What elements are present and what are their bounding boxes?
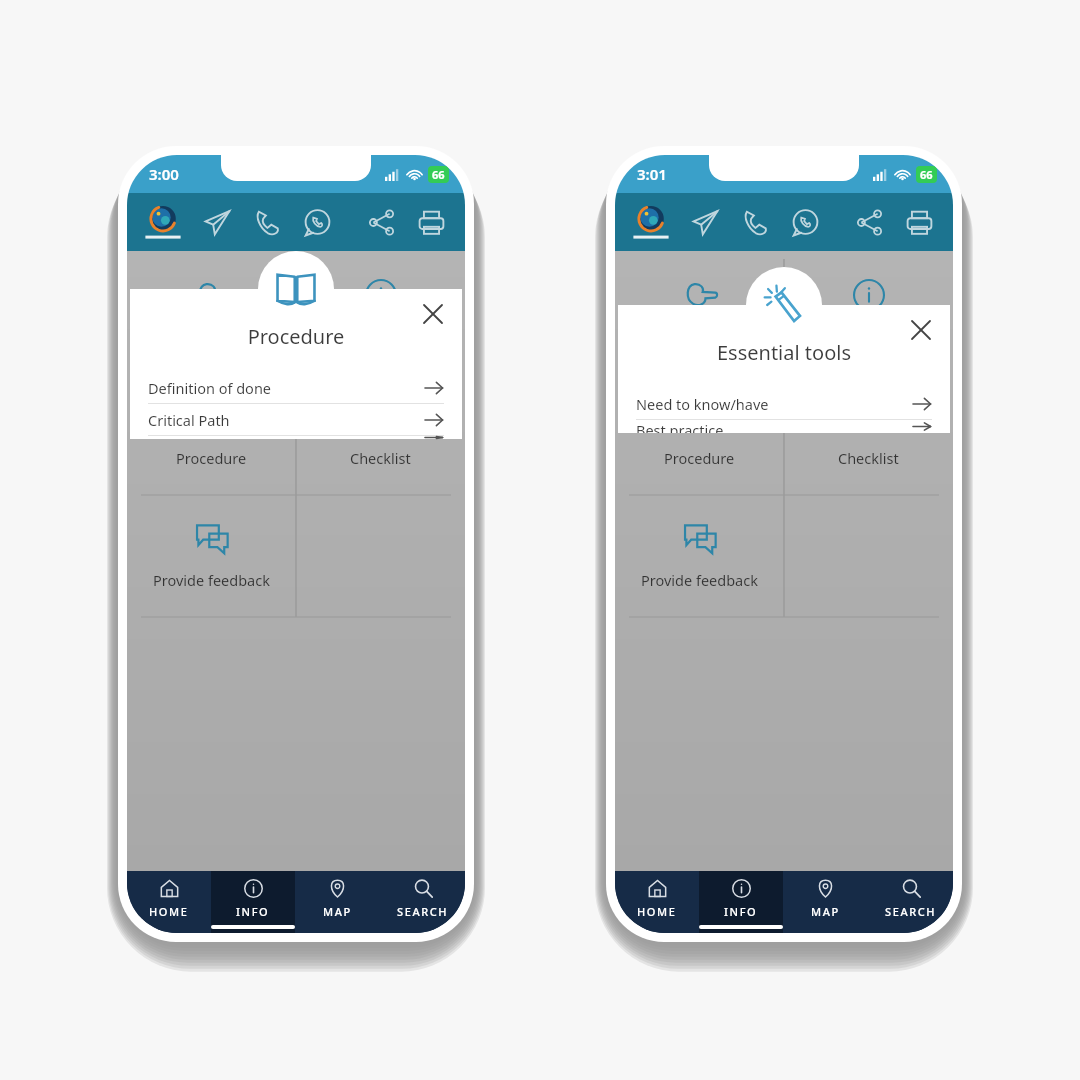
button[interactable]: SEARCH	[868, 871, 953, 933]
staticText: Essential tools	[618, 339, 950, 366]
button[interactable]: Share	[849, 202, 889, 242]
staticText: Need to know/have	[636, 394, 769, 414]
staticText: Checklist	[350, 448, 411, 468]
staticText: Procedure	[130, 323, 462, 350]
button[interactable]: Print	[899, 202, 939, 242]
staticText: 66	[920, 167, 933, 182]
staticText: 3:01	[637, 164, 667, 184]
button[interactable]: Checklist	[784, 373, 953, 495]
button[interactable]: Visual timeline	[148, 436, 444, 439]
button[interactable]: Close	[414, 295, 452, 333]
staticText: SEARCH	[885, 904, 937, 919]
staticText: 3:00	[149, 164, 179, 184]
staticText: INFO	[236, 904, 270, 919]
staticText: Checklist	[838, 448, 899, 468]
staticText: Need to know	[333, 326, 428, 346]
staticText: HOME	[637, 904, 677, 919]
button[interactable]: INFO	[699, 871, 783, 933]
staticText: SEARCH	[397, 904, 449, 919]
button[interactable]: MAP	[783, 871, 868, 933]
button[interactable]: Send	[197, 202, 237, 242]
button[interactable]: WhatsApp	[785, 202, 825, 242]
staticText: Critical Path	[148, 410, 230, 430]
button[interactable]: Share	[361, 202, 401, 242]
button[interactable]: Print	[411, 202, 451, 242]
button[interactable]: Evertive Solutions logo	[141, 200, 185, 244]
staticText: MAP	[811, 904, 840, 919]
button[interactable]: Provide feedback	[127, 495, 296, 617]
staticText: Procedure	[664, 448, 735, 468]
button[interactable]: HOME	[127, 871, 211, 933]
button[interactable]: MAP	[295, 871, 380, 933]
button[interactable]: Procedure	[615, 373, 784, 495]
button[interactable]: Need to know/have	[636, 388, 932, 419]
staticText: Need to know	[821, 326, 916, 346]
staticText: MAP	[323, 904, 352, 919]
staticText: Procedure	[176, 448, 247, 468]
button[interactable]: Best practice	[636, 420, 932, 433]
staticText: HOME	[149, 904, 189, 919]
button[interactable]: Critical Path	[148, 404, 444, 435]
button[interactable]: Call	[247, 202, 287, 242]
button[interactable]: Procedure	[127, 373, 296, 495]
staticText: Definition of done	[148, 378, 272, 398]
staticText: Best practice	[636, 420, 724, 433]
button[interactable]: Send	[685, 202, 725, 242]
button[interactable]: Start here	[615, 251, 784, 373]
button[interactable]: Definition of done	[148, 372, 444, 403]
button[interactable]: Provide feedback	[615, 495, 784, 617]
button[interactable]: INFO	[211, 871, 295, 933]
button[interactable]: Call	[735, 202, 775, 242]
button[interactable]: HOME	[615, 871, 699, 933]
staticText: INFO	[724, 904, 758, 919]
button[interactable]: WhatsApp	[297, 202, 337, 242]
button[interactable]: Start here	[127, 251, 296, 373]
staticText: Provide feedback	[153, 570, 270, 590]
staticText: Provide feedback	[641, 570, 758, 590]
staticText: 66	[432, 167, 445, 182]
button[interactable]: SEARCH	[380, 871, 465, 933]
button[interactable]: Need to know	[296, 251, 465, 373]
button[interactable]: Checklist	[296, 373, 465, 495]
button[interactable]: Evertive Solutions logo	[629, 200, 673, 244]
button[interactable]: Close	[902, 311, 940, 349]
button[interactable]: Need to know	[784, 251, 953, 373]
